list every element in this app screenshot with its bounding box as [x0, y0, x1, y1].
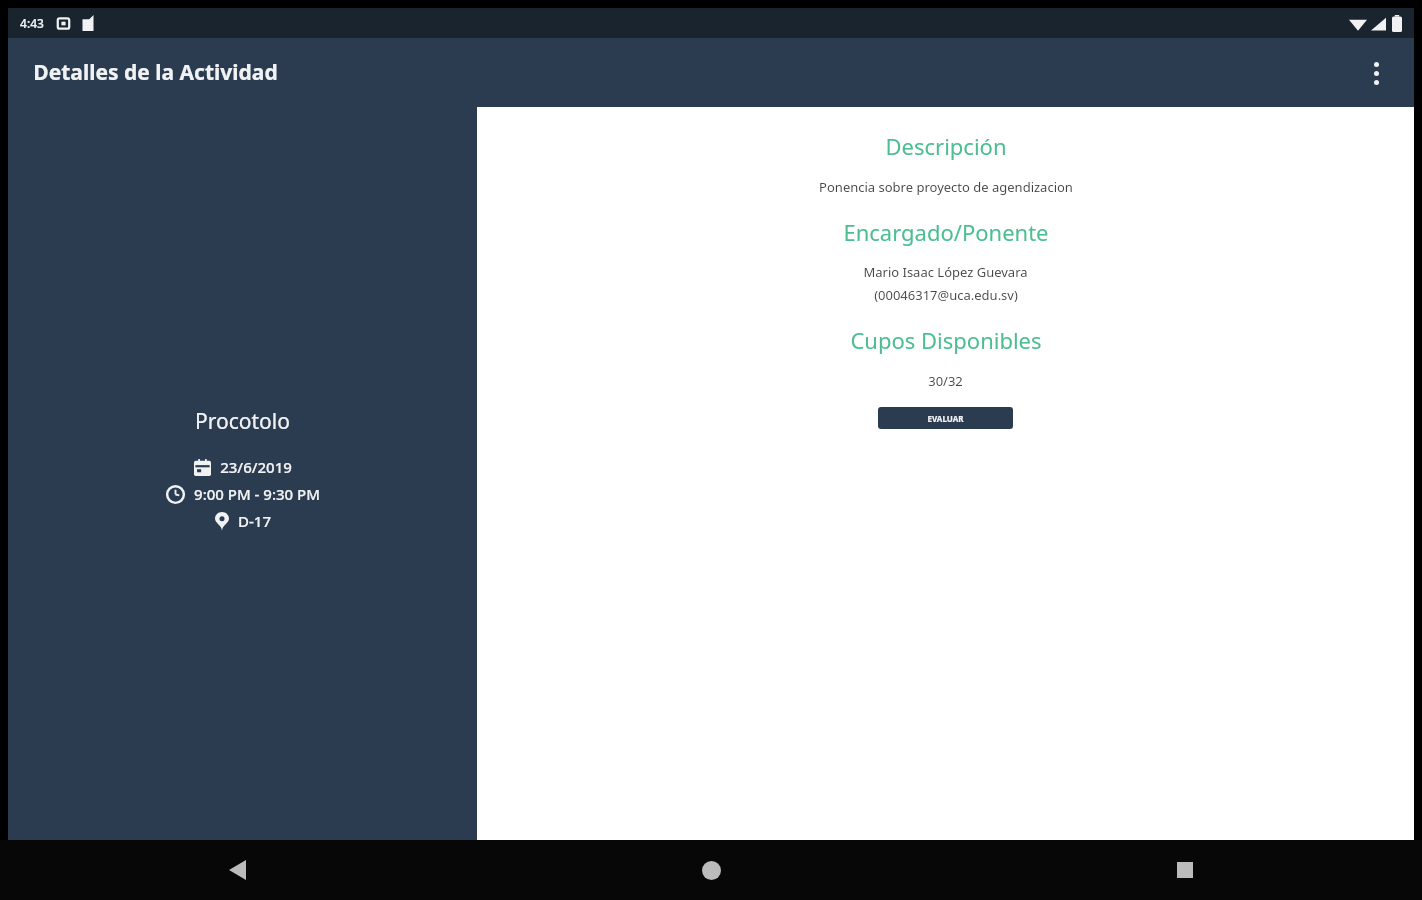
staticText: Descripción [885, 131, 1007, 161]
button[interactable]: EVALUAR [878, 407, 1013, 429]
staticText: 4:43 [20, 15, 44, 31]
staticText: (00046317@uca.edu.sv) [874, 286, 1018, 304]
staticText: 30/32 [928, 372, 963, 390]
staticText: EVALUAR [927, 413, 964, 424]
staticText: Ponencia sobre proyecto de agendizacion [819, 178, 1073, 196]
staticText: Mario Isaac López Guevara [863, 263, 1028, 281]
staticText: 23/6/2019 [220, 457, 292, 477]
staticText: D-17 [238, 511, 271, 531]
button[interactable]: Recent apps [948, 840, 1422, 900]
staticText: Detalles de la Actividad [33, 58, 278, 87]
staticText: Cupos Disponibles [850, 325, 1042, 355]
button[interactable]: Home [474, 840, 948, 900]
staticText: Procotolo [195, 407, 290, 436]
button[interactable]: Back [0, 840, 474, 900]
button[interactable]: More options [1354, 51, 1398, 95]
staticText: Encargado/Ponente [843, 217, 1049, 247]
staticText: 9:00 PM - 9:30 PM [194, 484, 320, 504]
